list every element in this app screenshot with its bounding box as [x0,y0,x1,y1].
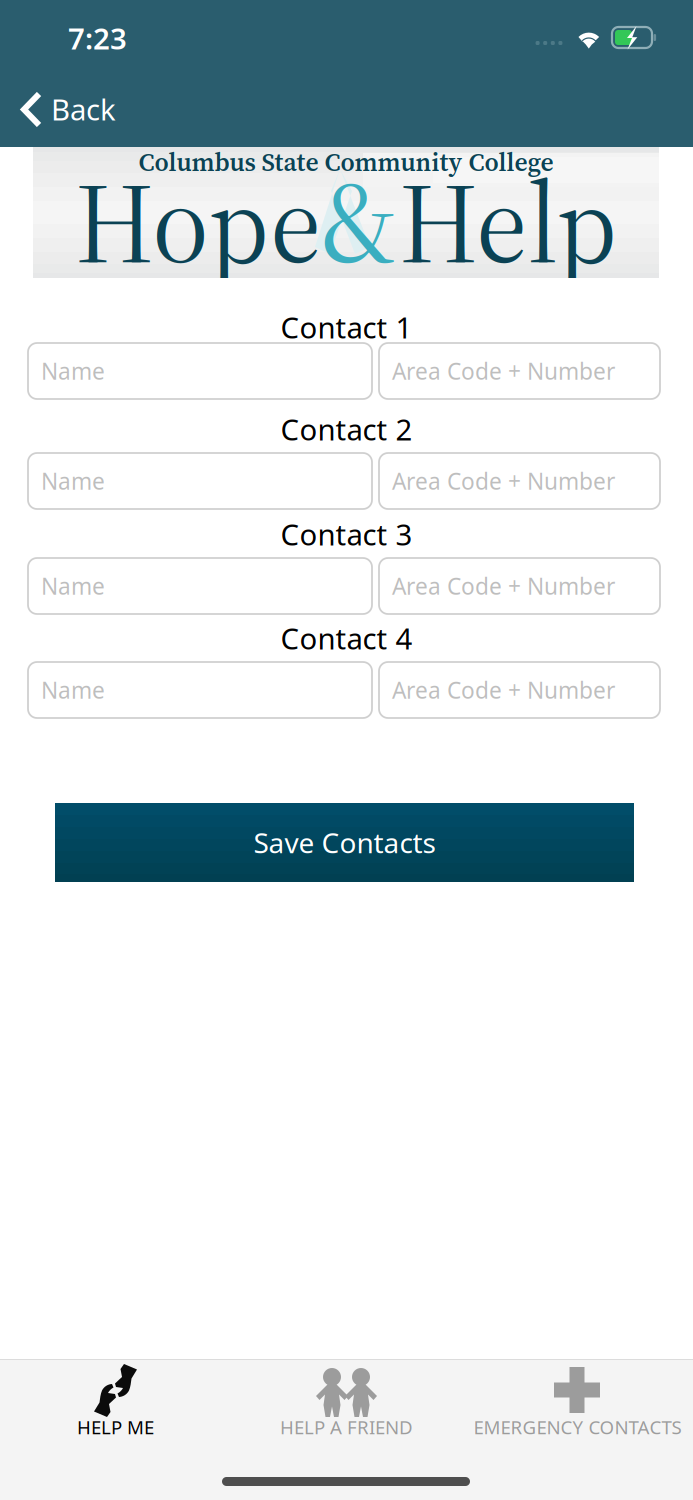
staticText: Contact 2 [280,409,412,448]
staticText: Hope [75,145,322,300]
staticText: HELP ME [77,1415,154,1439]
staticText: Name [41,466,105,496]
staticText: HELP A FRIEND [280,1415,413,1439]
staticText: Contact 3 [280,514,412,553]
staticText: Area Code + Number [392,571,615,601]
staticText: Area Code + Number [392,356,615,386]
staticText: Name [41,675,105,705]
button[interactable]: Back [2,80,127,138]
button[interactable]: EMERGENCY CONTACTS [462,1360,693,1455]
staticText: Columbus State Community College [138,145,553,179]
staticText: Name [41,356,105,386]
staticText: Save Contacts [253,824,435,861]
staticText: Name [41,571,105,601]
staticText: Area Code + Number [392,466,615,496]
staticText: Contact 4 [280,618,412,657]
staticText: 7:23 [68,18,127,57]
button[interactable]: Save Contacts [55,803,634,882]
button[interactable]: HELP ME [0,1360,231,1455]
staticText: & [322,145,399,300]
staticText: Area Code + Number [392,675,615,705]
button[interactable]: HELP A FRIEND [231,1360,462,1455]
staticText: Back [51,89,116,128]
staticText: Contact 1 [280,307,412,346]
staticText: Help [399,145,617,300]
staticText: EMERGENCY CONTACTS [473,1415,681,1439]
